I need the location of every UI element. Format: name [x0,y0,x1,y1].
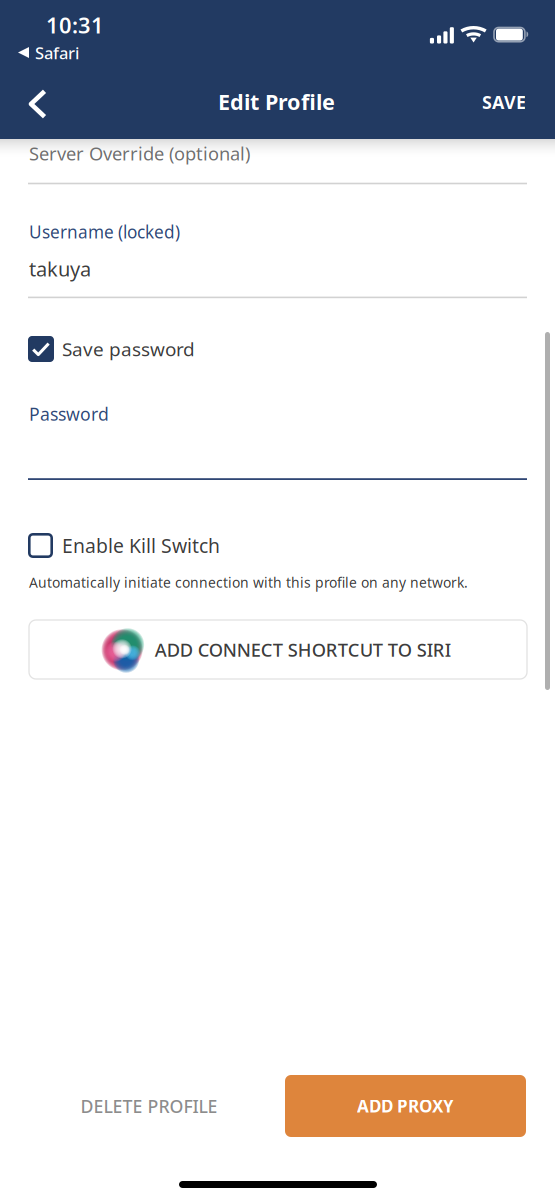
staticText: ADD PROXY [357,1094,454,1118]
staticText: SAVE [482,90,526,114]
staticText: DELETE PROFILE [80,1094,217,1118]
button[interactable]: Save password [28,336,195,362]
staticText: Safari [35,41,79,64]
button[interactable]: Enable Kill Switch [28,533,220,558]
button[interactable]: ADD PROXY [285,1075,526,1137]
staticText: Username (locked) [29,220,180,243]
staticText: Enable Kill Switch [62,532,220,559]
button[interactable]: DELETE PROFILE [29,1075,269,1137]
staticText: Save password [62,336,195,362]
button[interactable]: Back [22,83,53,125]
staticText: Edit Profile [218,87,335,116]
staticText: Password [29,402,109,426]
button[interactable]: ADD CONNECT SHORTCUT TO SIRI [29,620,527,679]
staticText: takuya [29,255,91,282]
staticText: 10:31 [46,10,104,40]
staticText: Automatically initiate connection with t… [29,573,468,592]
staticText: ADD CONNECT SHORTCUT TO SIRI [155,637,451,662]
staticText: Server Override (optional) [29,141,250,166]
button[interactable]: SAVE [474,85,534,119]
